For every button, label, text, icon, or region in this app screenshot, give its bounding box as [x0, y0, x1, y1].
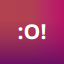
staticText: :O!	[17, 17, 46, 45]
button[interactable]: :O!	[0, 0, 64, 64]
